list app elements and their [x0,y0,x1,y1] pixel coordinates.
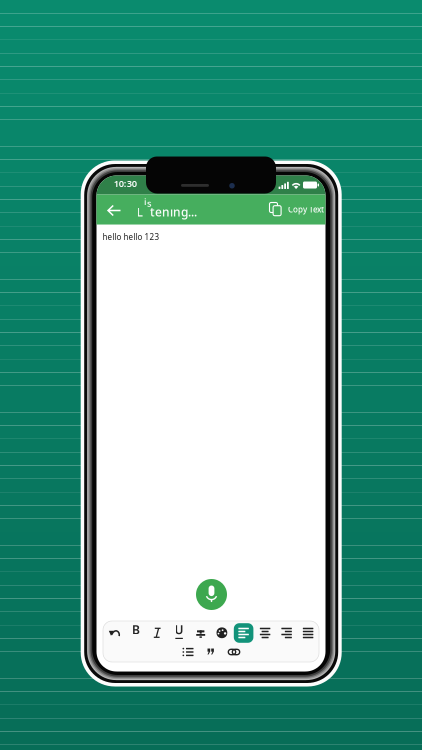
staticText: i [144,195,147,208]
button[interactable]: Insert link [225,644,243,660]
button[interactable]: Bold [126,623,146,643]
staticText: 10:30 [114,177,137,190]
button[interactable]: Copy Text [269,194,325,224]
button[interactable]: Undo [105,623,125,643]
staticText: B [132,622,140,637]
button[interactable]: Align left [234,623,254,643]
button[interactable]: Strikethrough [191,623,211,643]
button[interactable]: Align centre [255,623,275,643]
staticText: s [147,197,152,209]
button[interactable]: Block quote [202,644,220,660]
staticText: U [175,622,184,637]
button[interactable]: Justify [298,623,318,643]
staticText: tening... [150,204,197,220]
button[interactable]: Back [102,198,126,222]
button[interactable]: Underline [169,623,189,643]
staticText: hello hello 123 [103,231,160,242]
button[interactable]: Italic [148,623,168,643]
button[interactable]: Text colour [212,623,232,643]
button[interactable]: Bulleted list [179,644,197,660]
button[interactable]: Start recording [196,579,227,610]
button[interactable]: Align right [277,623,297,643]
staticText: L [136,204,142,220]
staticText: Copy Text [288,204,324,215]
